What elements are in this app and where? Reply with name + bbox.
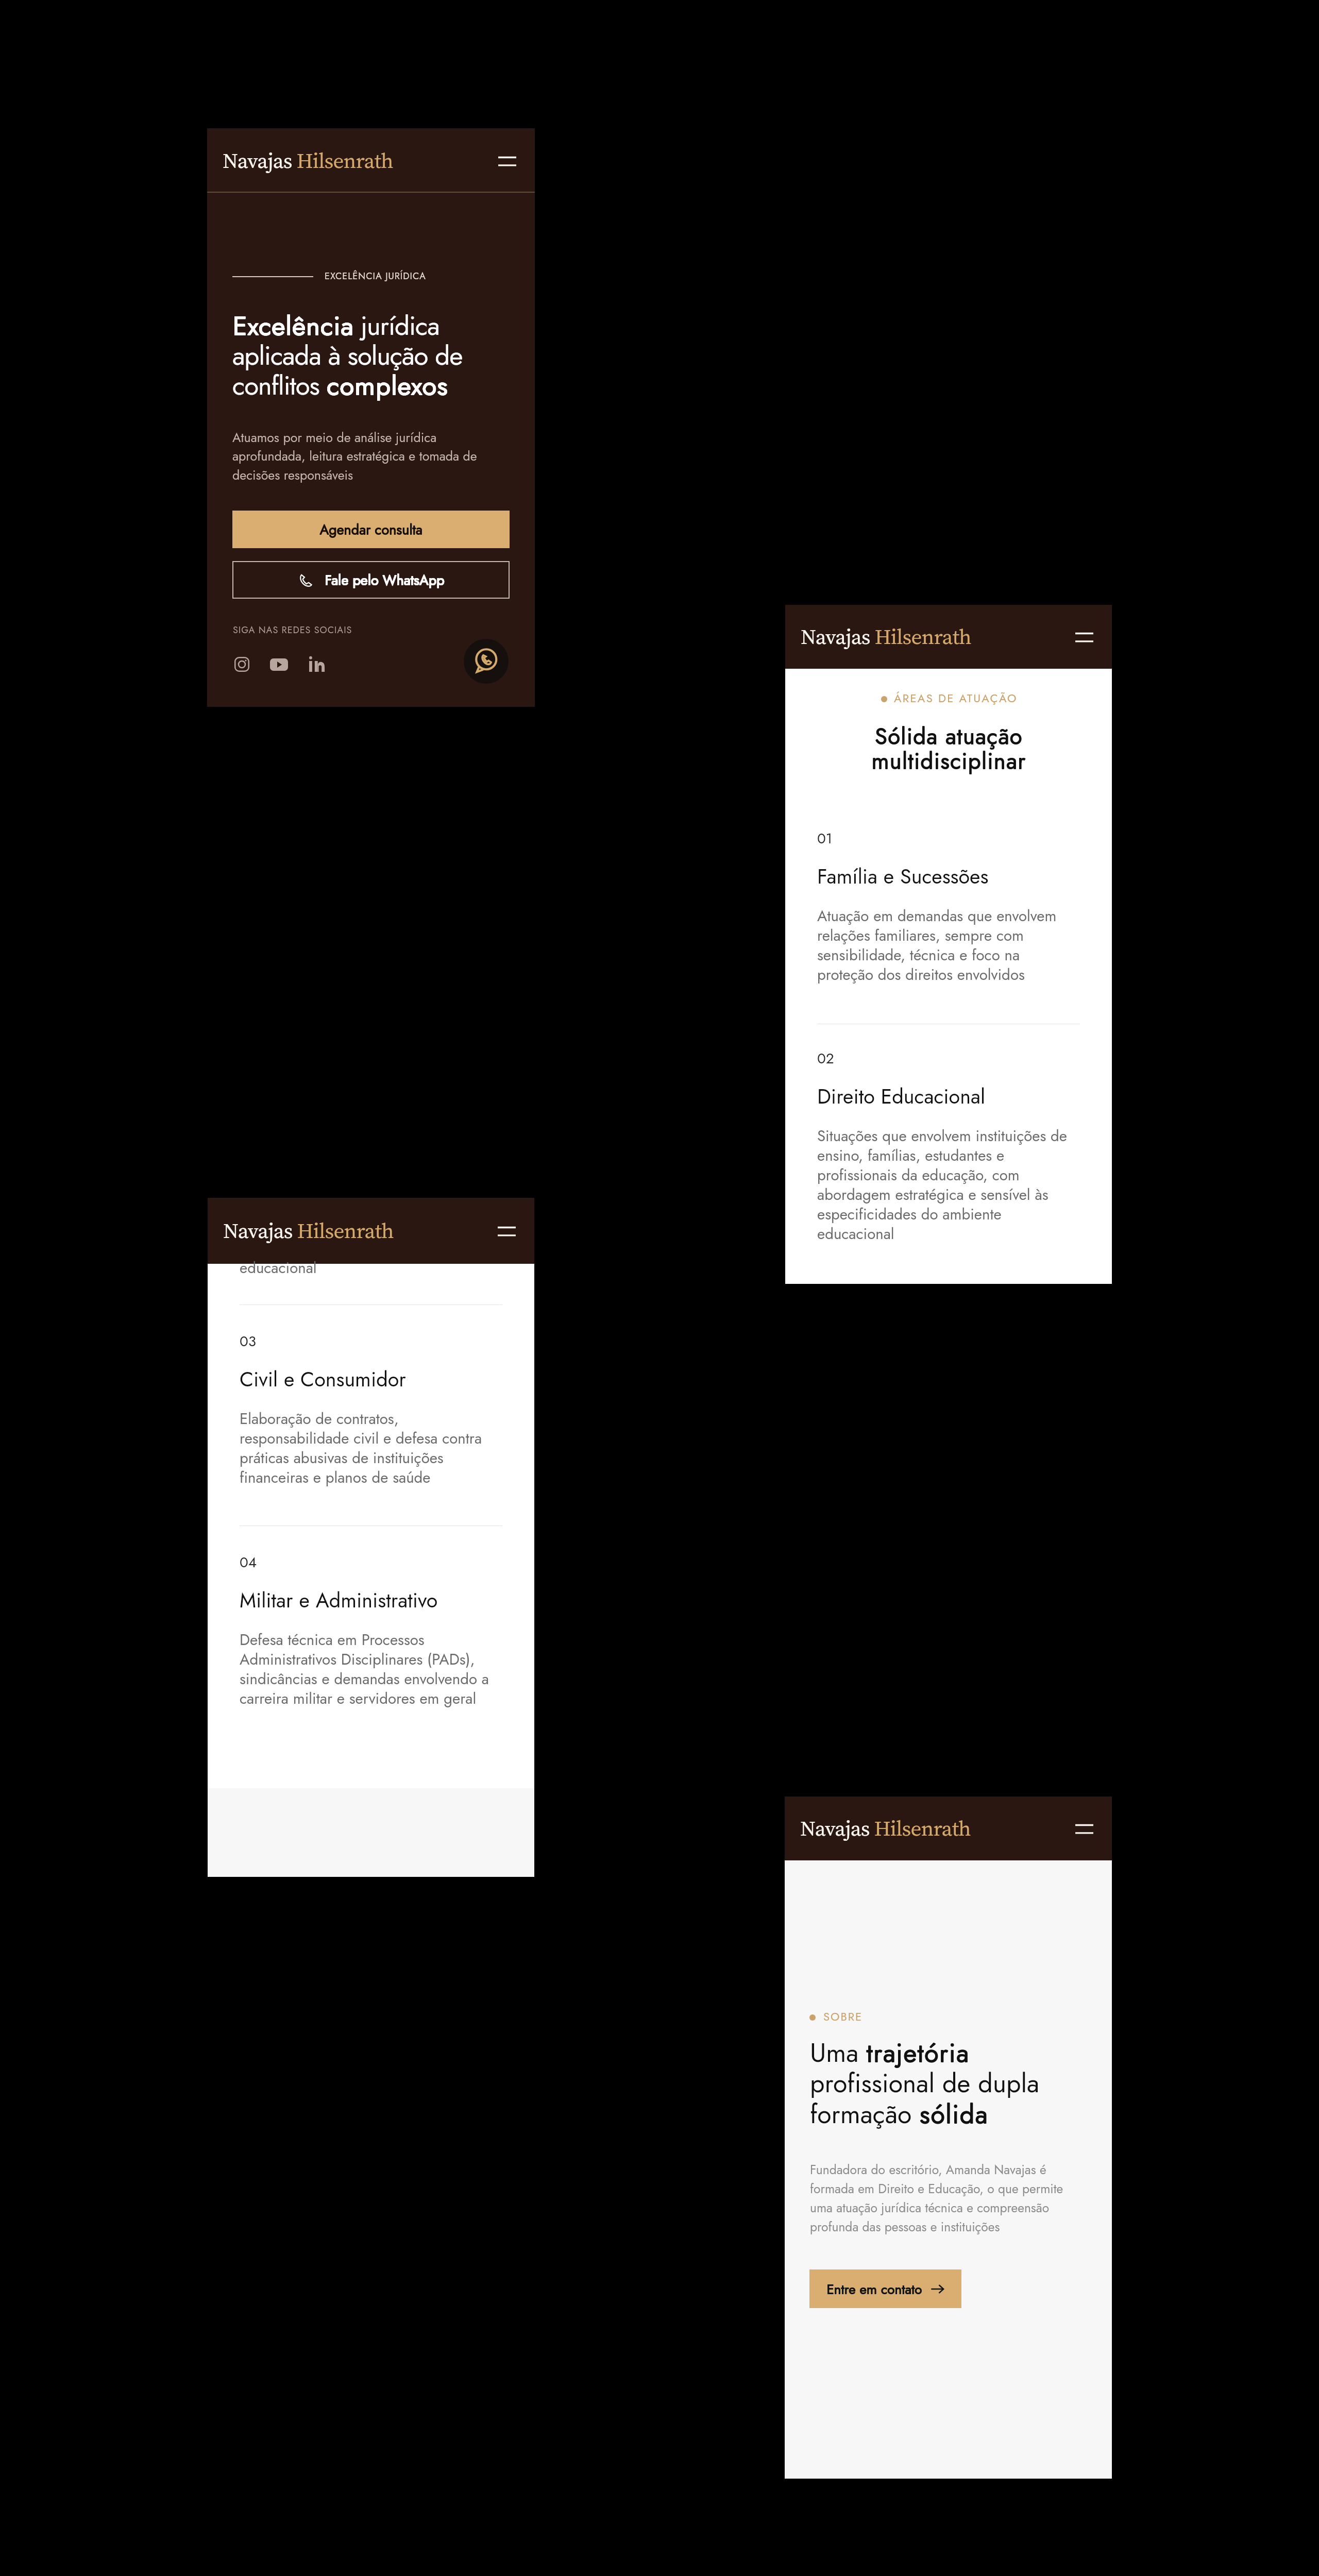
button[interactable]: Menu (1070, 1815, 1098, 1842)
button[interactable]: Fale pelo WhatsApp (232, 561, 510, 599)
staticText: SOBRE (823, 2008, 906, 2025)
staticText: 03 (240, 1331, 301, 1351)
button[interactable]: Menu (493, 147, 521, 175)
staticText: Militar e Administrativo (240, 1586, 508, 1615)
button[interactable]: Menu (493, 1217, 520, 1245)
staticText: Excelência jurídica aplicada à solução d… (232, 307, 485, 405)
staticText: Entre em contato (826, 2280, 922, 2299)
staticText: Fundadora do escritório, Amanda Navajas … (810, 2161, 1073, 2236)
staticText: Excelência jurídica aplicada à solução d… (233, 307, 485, 405)
staticText: Agendar consulta (320, 519, 423, 539)
button[interactable]: LinkedIn (309, 656, 325, 672)
staticText: Situações que envolvem instituições de e… (817, 1125, 1073, 1245)
staticText: Direito Educacional (817, 1082, 1085, 1111)
button[interactable]: Agendar consulta (232, 511, 510, 548)
staticText: Elaboração de contratos, responsabilidad… (240, 1408, 496, 1488)
staticText: Excelência jurídica aplicada à solução d… (232, 307, 485, 404)
button[interactable]: Entre em contato (809, 2269, 961, 2308)
staticText: ÁREAS DE ATUAÇÃO (894, 690, 1028, 706)
staticText: Sólida atuação multidisciplinar (856, 720, 1042, 777)
staticText: Sólida atuação multidisciplinar (856, 720, 1041, 777)
staticText: educacional (240, 1257, 496, 1279)
staticText: Navajas Hilsenrath (223, 146, 393, 175)
staticText: Fale pelo WhatsApp (325, 570, 445, 590)
staticText: Fale pelo WhatsApp (325, 570, 445, 590)
staticText: 02 (817, 1048, 879, 1069)
button[interactable] (240, 1546, 497, 1561)
staticText: Entre em contato (826, 2279, 922, 2299)
staticText: Atuamos por meio de análise jurídica apr… (232, 428, 490, 484)
staticText: Sólida atuação multidisciplinar (856, 720, 1042, 777)
staticText: Uma trajetória profissional de dupla for… (810, 2035, 1058, 2133)
button[interactable]: Instagram (234, 657, 249, 672)
staticText: Entre em contato (827, 2280, 922, 2299)
staticText: Excelência jurídica aplicada à solução d… (232, 307, 485, 404)
staticText: Família e Sucessões (817, 862, 1085, 891)
staticText: Entre em contato (827, 2279, 922, 2299)
staticText: Uma trajetória profissional de dupla for… (810, 2034, 1058, 2133)
button[interactable]: YouTube (270, 658, 288, 671)
staticText: Agendar consulta (319, 520, 422, 540)
staticText: Uma trajetória profissional de dupla for… (810, 2034, 1057, 2133)
staticText: Navajas Hilsenrath (223, 1216, 394, 1245)
button[interactable] (240, 1325, 497, 1340)
button[interactable] (817, 822, 1075, 837)
staticText: Civil e Consumidor (240, 1365, 508, 1394)
staticText: Uma trajetória profissional de dupla for… (810, 2035, 1057, 2133)
staticText: 04 (240, 1552, 301, 1572)
staticText: Fale pelo WhatsApp (325, 570, 445, 590)
staticText: Uma trajetória profissional de dupla for… (810, 2034, 1057, 2133)
staticText: Sólida atuação multidisciplinar (856, 720, 1041, 777)
staticText: Defesa técnica em Processos Administrati… (240, 1629, 496, 1709)
staticText: Navajas Hilsenrath (800, 1814, 971, 1843)
staticText: Excelência jurídica aplicada à solução d… (233, 307, 485, 404)
staticText: EXCELÊNCIA JURÍDICA (325, 269, 459, 283)
staticText: Atuação em demandas que envolvem relaçõe… (817, 905, 1073, 986)
button[interactable] (817, 1042, 1075, 1057)
button[interactable]: WhatsApp (464, 639, 509, 684)
button[interactable]: Menu (1070, 623, 1098, 651)
staticText: SIGA NAS REDES SOCIAIS (233, 623, 387, 637)
staticText: Fale pelo WhatsApp (325, 570, 445, 590)
staticText: Agendar consulta (320, 520, 423, 540)
staticText: Agendar consulta (319, 519, 422, 539)
staticText: Navajas Hilsenrath (801, 622, 971, 651)
staticText: 01 (817, 828, 879, 849)
